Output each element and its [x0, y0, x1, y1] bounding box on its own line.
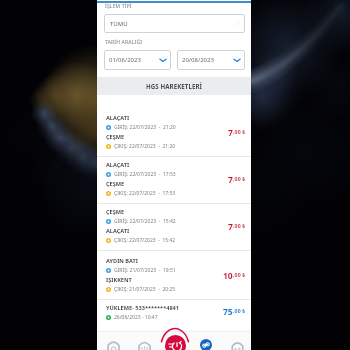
button[interactable]: YÜKLEME- 533*******4841	[97, 300, 251, 324]
staticText: IŞIKKENT	[106, 276, 132, 284]
staticText: HGS HAREKETLERİ	[146, 82, 203, 90]
button[interactable]: Diğer	[228, 336, 246, 350]
button[interactable]: Hızlı işlem	[165, 335, 186, 350]
button[interactable]: 20/08/2023	[177, 50, 245, 70]
staticText: TÜMÜ	[110, 20, 128, 28]
staticText: ALAÇATI	[106, 161, 130, 169]
button[interactable]: Ana sayfa	[104, 336, 122, 350]
staticText: TARİH ARALIĞI	[105, 39, 143, 46]
staticText: ÇEŞME	[106, 133, 125, 141]
staticText: 75	[223, 306, 233, 318]
staticText: 7	[228, 127, 233, 139]
button[interactable]: ALAÇATI	[97, 156, 251, 204]
button[interactable]: 01/06/2023	[104, 50, 171, 70]
staticText: 7	[228, 174, 233, 186]
staticText: GİRİŞ: 22/07/2023 - 15:42	[114, 218, 176, 225]
staticText: ,00 ₺	[233, 222, 246, 229]
staticText: AYDIN BATI	[106, 257, 138, 265]
staticText: GİRİŞ: 21/07/2023 - 19:51	[114, 267, 176, 274]
staticText: ,00 ₺	[233, 307, 246, 314]
staticText: 10	[223, 270, 233, 282]
staticText: İŞLEM TİPİ	[105, 3, 132, 10]
button[interactable]: ALAÇATI	[97, 109, 251, 157]
staticText: ,00 ₺	[233, 271, 246, 278]
staticText: ALAÇATI	[106, 227, 130, 235]
staticText: ÇIKIŞ: 22/07/2023 - 15:42	[114, 237, 176, 244]
button[interactable]: AYDIN BATI	[97, 252, 251, 300]
staticText: GİRİŞ: 22/07/2023 - 17:53	[114, 171, 176, 178]
staticText: YÜKLEME- 533*******4841	[106, 304, 179, 312]
staticText: ÇEŞME	[106, 180, 125, 188]
staticText: ÇIKIŞ: 22/07/2023 - 21:20	[114, 143, 176, 150]
staticText: ÇIKIŞ: 22/07/2023 - 17:53	[114, 190, 176, 197]
staticText: 7	[228, 221, 233, 233]
button[interactable]: ÇEŞME	[97, 203, 251, 251]
staticText: ALAÇATI	[106, 114, 130, 122]
button[interactable]: TÜMÜ	[104, 14, 245, 33]
staticText: ,00 ₺	[233, 175, 246, 182]
button[interactable]: Kartlarım	[135, 336, 153, 350]
staticText: ,00 ₺	[233, 128, 246, 135]
staticText: 01/06/2023	[109, 56, 141, 64]
staticText: ÇIKIŞ: 21/07/2023 - 20:25	[114, 286, 176, 293]
staticText: 26/06/2023 - 10:47	[114, 314, 158, 321]
staticText: GİRİŞ: 22/07/2023 - 21:20	[114, 124, 176, 131]
button[interactable]: Bağlantı	[197, 336, 215, 350]
staticText: 20/08/2023	[182, 56, 214, 64]
staticText: ÇEŞME	[106, 208, 125, 216]
